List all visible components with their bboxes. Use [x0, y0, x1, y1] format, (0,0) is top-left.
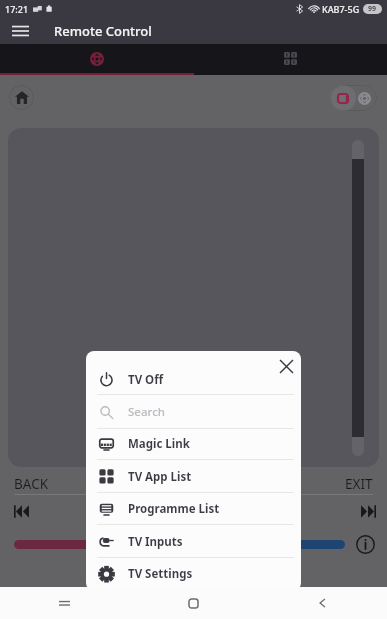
button[interactable]: Programme List: [86, 493, 301, 525]
button[interactable]: Open navigation menu: [0, 18, 40, 44]
button[interactable]: TV Settings: [86, 557, 301, 591]
button[interactable]: Rewind: [8, 497, 37, 526]
button[interactable]: Number keypad tab: [193, 44, 387, 75]
staticText: KAB7-5G: [322, 3, 360, 15]
staticText: Remote Control: [54, 22, 152, 40]
staticText: EXIT: [345, 475, 373, 493]
button[interactable]: BACK: [0, 470, 90, 498]
button[interactable]: TV Inputs: [86, 525, 301, 558]
button[interactable]: Home: [129, 587, 258, 619]
button[interactable]: TV Off: [86, 364, 301, 395]
button[interactable]: Close: [271, 351, 301, 381]
button[interactable]: EXIT: [297, 470, 387, 498]
button[interactable]: Navigation pad tab: [0, 44, 193, 75]
button[interactable]: Toggle input mode: [330, 85, 377, 111]
button[interactable]: Back: [258, 587, 387, 619]
button[interactable]: Information: [353, 532, 377, 556]
staticText: TV App List: [128, 469, 192, 485]
button[interactable]: Magic Link: [86, 428, 301, 460]
staticText: Search: [128, 404, 165, 420]
staticText: TV Settings: [128, 566, 193, 582]
button[interactable]: Touchpad: [8, 128, 379, 467]
staticText: BACK: [14, 475, 49, 493]
button[interactable]: TV App List: [86, 460, 301, 493]
button[interactable]: Search: [86, 395, 301, 429]
staticText: Programme List: [128, 501, 220, 517]
button[interactable]: Recent apps: [0, 587, 129, 619]
staticText: 99: [368, 4, 377, 14]
button[interactable]: Home: [9, 85, 34, 110]
staticText: 17:21: [5, 3, 29, 15]
staticText: TV Inputs: [128, 534, 183, 550]
staticText: TV Off: [128, 372, 164, 388]
staticText: Magic Link: [128, 436, 190, 452]
button[interactable]: Fast forward: [352, 497, 381, 526]
